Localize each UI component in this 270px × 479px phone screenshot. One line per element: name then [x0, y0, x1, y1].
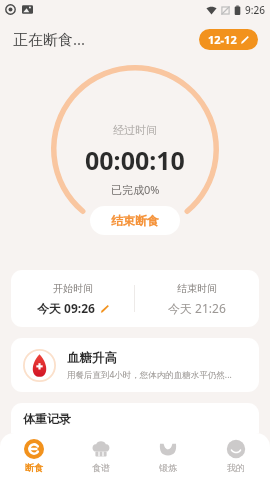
button[interactable]: 我的 [202, 433, 270, 479]
staticText: 正在断食... [13, 29, 86, 49]
button[interactable]: 结束断食 [90, 206, 180, 235]
staticText: 断食 [25, 462, 43, 473]
staticText: 我的 [227, 462, 245, 473]
staticText: 已完成0% [111, 182, 160, 197]
button[interactable]: 12-12 [199, 29, 258, 50]
button[interactable]: 体重记录 [11, 403, 259, 433]
staticText: 结束时间 [177, 282, 217, 295]
staticText: 食谱 [92, 462, 110, 473]
staticText: 9:26 [245, 3, 265, 17]
staticText: 开始时间 [53, 282, 93, 295]
staticText: 体重记录 [23, 411, 71, 426]
staticText: 锻炼 [159, 462, 177, 473]
button[interactable]: 锻炼 [134, 433, 202, 479]
staticText: 今天 09:26 [37, 300, 95, 316]
staticText: 00:00:10 [85, 143, 185, 177]
staticText: 经过时间 [113, 123, 157, 137]
button[interactable]: 血糖升高 [11, 338, 259, 392]
button[interactable]: 断食 [0, 433, 67, 479]
staticText: 结束断食 [111, 213, 159, 228]
staticText: 血糖升高 [67, 350, 117, 366]
staticText: 12-12 [208, 32, 237, 47]
staticText: 今天 21:26 [168, 300, 226, 316]
button[interactable]: 食谱 [67, 433, 134, 479]
staticText: 用餐后直到4小时，您体内的血糖水平仍然... [67, 369, 232, 381]
button[interactable]: 开始时间 [11, 270, 259, 327]
